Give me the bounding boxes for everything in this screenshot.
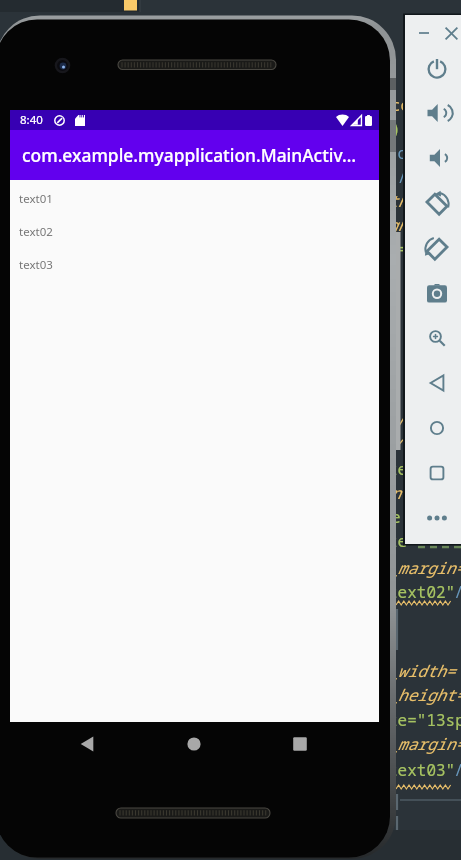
staticText: ze <box>388 530 408 552</box>
staticText: th <box>388 190 408 212</box>
button[interactable]: text03 <box>10 248 379 281</box>
button[interactable]: Take screenshot <box>420 276 454 310</box>
button[interactable]: Home <box>420 411 454 445</box>
button[interactable]: text02 <box>10 215 379 248</box>
staticText: text02" <box>388 581 456 603</box>
staticText: text03 <box>19 257 53 273</box>
button[interactable]: Volume down <box>420 141 454 175</box>
staticText: ): <box>391 118 411 140</box>
staticText: n <box>391 482 401 504</box>
button[interactable]: Rotate left <box>420 186 454 220</box>
button[interactable]: Overview <box>420 456 454 490</box>
button[interactable]: Recent apps <box>282 726 318 762</box>
button[interactable]: com.example.myapplication.MainActiv… <box>10 130 379 180</box>
button[interactable]: Back <box>420 366 454 400</box>
staticText: e <box>391 506 401 528</box>
button[interactable]: Rotate right <box>420 231 454 265</box>
button[interactable]: Back <box>69 726 105 762</box>
staticText: _margin=" <box>388 733 461 755</box>
button[interactable]: Zoom <box>420 321 454 355</box>
button[interactable]: More <box>420 501 454 535</box>
button[interactable]: text01 <box>10 182 379 215</box>
button[interactable]: Volume up <box>420 96 454 130</box>
staticText: text01 <box>19 191 53 207</box>
staticText: /> <box>454 581 461 603</box>
button[interactable]: Power <box>420 51 454 85</box>
staticText: text02 <box>19 224 53 240</box>
staticText: co <box>391 94 411 116</box>
staticText: w <box>391 410 401 432</box>
staticText: ze <box>388 458 408 480</box>
button[interactable]: Home <box>176 726 212 762</box>
button[interactable]: Close <box>441 23 461 43</box>
staticText: 8:40 <box>20 112 43 128</box>
staticText: n= <box>388 238 408 260</box>
staticText: _height=" <box>388 684 461 706</box>
staticText: ze="13sp" <box>388 709 461 731</box>
button[interactable]: Minimize <box>414 23 434 43</box>
staticText: com.example.myapplication.MainActiv… <box>22 143 357 167</box>
staticText: so <box>388 142 408 164</box>
staticText: _margin=" <box>388 557 461 579</box>
staticText: / <box>391 434 401 456</box>
staticText: gh <box>388 214 408 236</box>
staticText: // <box>388 166 408 188</box>
staticText: text03" <box>388 759 456 781</box>
staticText: _width="w <box>388 660 461 682</box>
staticText: /> <box>454 759 461 781</box>
